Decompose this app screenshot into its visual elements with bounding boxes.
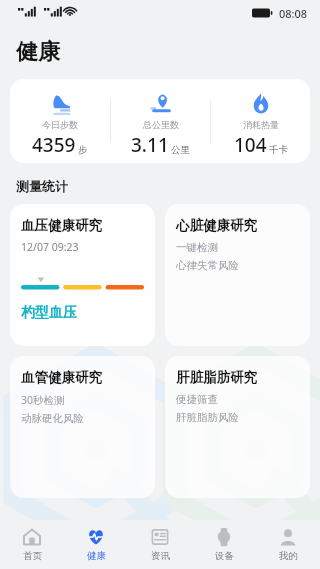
staticText: 总公里数 bbox=[143, 119, 179, 130]
button[interactable]: 总公里数 bbox=[111, 79, 210, 163]
button[interactable]: 首页 bbox=[0, 520, 64, 569]
button[interactable]: 心脏健康研究 bbox=[165, 204, 310, 346]
staticText: 肝脏脂肪研究 bbox=[176, 369, 257, 386]
staticText: 心脏健康研究 bbox=[176, 217, 257, 234]
staticText: 3.11 bbox=[131, 132, 169, 158]
staticText: 08:08 bbox=[279, 6, 308, 21]
staticText: 肝脏脂肪风险 bbox=[176, 411, 239, 424]
staticText: 一键检测 bbox=[176, 241, 218, 254]
staticText: 12/07 09:23 bbox=[21, 240, 79, 254]
button[interactable]: 血压健康研究 bbox=[10, 204, 155, 346]
staticText: 设备 bbox=[215, 550, 234, 562]
staticText: 便捷筛查 bbox=[176, 393, 218, 406]
staticText: 104 bbox=[234, 132, 267, 158]
staticText: 步 bbox=[78, 144, 88, 156]
staticText: 资讯 bbox=[151, 550, 170, 562]
staticText: 健康 bbox=[87, 550, 106, 562]
button[interactable]: 设备 bbox=[192, 520, 256, 569]
staticText: 杓型血压 bbox=[21, 304, 77, 322]
staticText: 动脉硬化风险 bbox=[21, 412, 84, 425]
button[interactable]: 血管健康研究 bbox=[10, 356, 155, 498]
staticText: 30秒检测 bbox=[21, 393, 65, 407]
staticText: 公里 bbox=[171, 144, 190, 156]
button[interactable]: 消耗热量 bbox=[211, 79, 310, 163]
button[interactable]: 资讯 bbox=[128, 520, 192, 569]
staticText: 消耗热量 bbox=[243, 119, 279, 130]
staticText: 4359 bbox=[32, 132, 76, 158]
staticText: 健康 bbox=[16, 38, 60, 66]
button[interactable]: 今日步数 bbox=[10, 79, 110, 163]
staticText: 血压健康研究 bbox=[21, 217, 102, 234]
staticText: 千卡 bbox=[269, 144, 288, 156]
staticText: 今日步数 bbox=[42, 119, 78, 130]
staticText: 血管健康研究 bbox=[21, 369, 102, 386]
button[interactable]: 健康 bbox=[64, 520, 128, 569]
staticText: 我的 bbox=[279, 550, 298, 562]
staticText: 测量统计 bbox=[16, 178, 68, 194]
staticText: 心律失常风险 bbox=[176, 259, 239, 272]
button[interactable]: 今日步数 bbox=[10, 79, 310, 163]
button[interactable]: 肝脏脂肪研究 bbox=[165, 356, 310, 498]
staticText: 首页 bbox=[23, 550, 42, 562]
button[interactable]: 我的 bbox=[256, 520, 320, 569]
